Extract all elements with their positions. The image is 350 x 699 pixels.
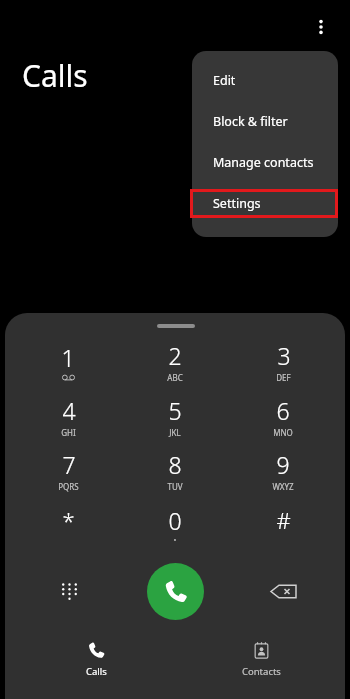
staticText: DEF — [276, 372, 291, 383]
button[interactable]: Call — [147, 563, 204, 620]
button[interactable]: Calls — [53, 641, 139, 691]
button[interactable]: Block & filter — [192, 107, 338, 136]
button[interactable]: 3 — [246, 336, 320, 386]
staticText: Edit — [213, 72, 236, 89]
staticText: # — [276, 505, 291, 535]
staticText: Calls — [22, 55, 88, 96]
button[interactable]: Manage contacts — [192, 148, 338, 177]
staticText: Contacts — [242, 665, 281, 678]
staticText: Manage contacts — [213, 154, 314, 171]
button[interactable]: 5 — [138, 391, 212, 441]
staticText: PQRS — [58, 481, 79, 492]
button[interactable]: # — [246, 499, 320, 549]
button[interactable]: 1 — [31, 336, 105, 386]
button[interactable]: * — [31, 499, 105, 549]
button[interactable]: Edit — [192, 66, 338, 95]
staticText: TUV — [167, 481, 183, 492]
button[interactable]: 9 — [246, 445, 320, 495]
staticText: WXYZ — [272, 481, 294, 492]
button[interactable]: 2 — [138, 336, 212, 386]
button[interactable]: Settings — [192, 189, 338, 218]
staticText: JKL — [169, 427, 181, 438]
staticText: 7 — [62, 449, 76, 480]
button[interactable]: 0 — [138, 499, 212, 549]
button[interactable]: Backspace — [261, 569, 305, 613]
staticText: 5 — [168, 395, 182, 426]
staticText: 1 — [61, 342, 75, 373]
staticText: 4 — [62, 395, 76, 426]
staticText: MNO — [273, 427, 293, 438]
staticText: Block & filter — [213, 113, 288, 130]
staticText: 0 — [168, 505, 182, 536]
staticText: GHI — [61, 427, 76, 438]
staticText: Calls — [86, 665, 107, 678]
staticText: 6 — [276, 395, 290, 426]
staticText: ABC — [167, 372, 183, 383]
staticText: 3 — [277, 340, 291, 371]
staticText: Settings — [213, 195, 261, 212]
staticText: * — [62, 505, 75, 535]
staticText: 2 — [168, 340, 182, 371]
staticText: 8 — [168, 449, 182, 480]
button[interactable]: 4 — [31, 391, 105, 441]
button[interactable]: 7 — [31, 445, 105, 495]
button[interactable]: More options — [305, 11, 337, 43]
button[interactable]: 6 — [246, 391, 320, 441]
button[interactable]: Contacts — [215, 641, 307, 691]
staticText: 9 — [276, 449, 290, 480]
button[interactable]: Hide keypad — [47, 569, 91, 613]
button[interactable]: 8 — [138, 445, 212, 495]
